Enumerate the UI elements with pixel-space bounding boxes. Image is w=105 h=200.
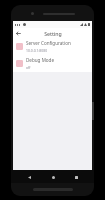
button[interactable]: Recent apps [71,172,81,182]
button[interactable]: Debug Mode [13,55,92,72]
staticText: 10.0.0.1:8080 [26,48,48,53]
staticText: Debug Mode [26,57,54,63]
button[interactable]: Server Configuration [13,38,92,55]
staticText: off [26,65,31,70]
button[interactable]: Back [24,172,34,182]
button[interactable]: Home [48,172,58,182]
staticText: Setting [44,30,62,37]
button[interactable]: Back [14,29,23,38]
staticText: Server Configuration [26,40,71,46]
